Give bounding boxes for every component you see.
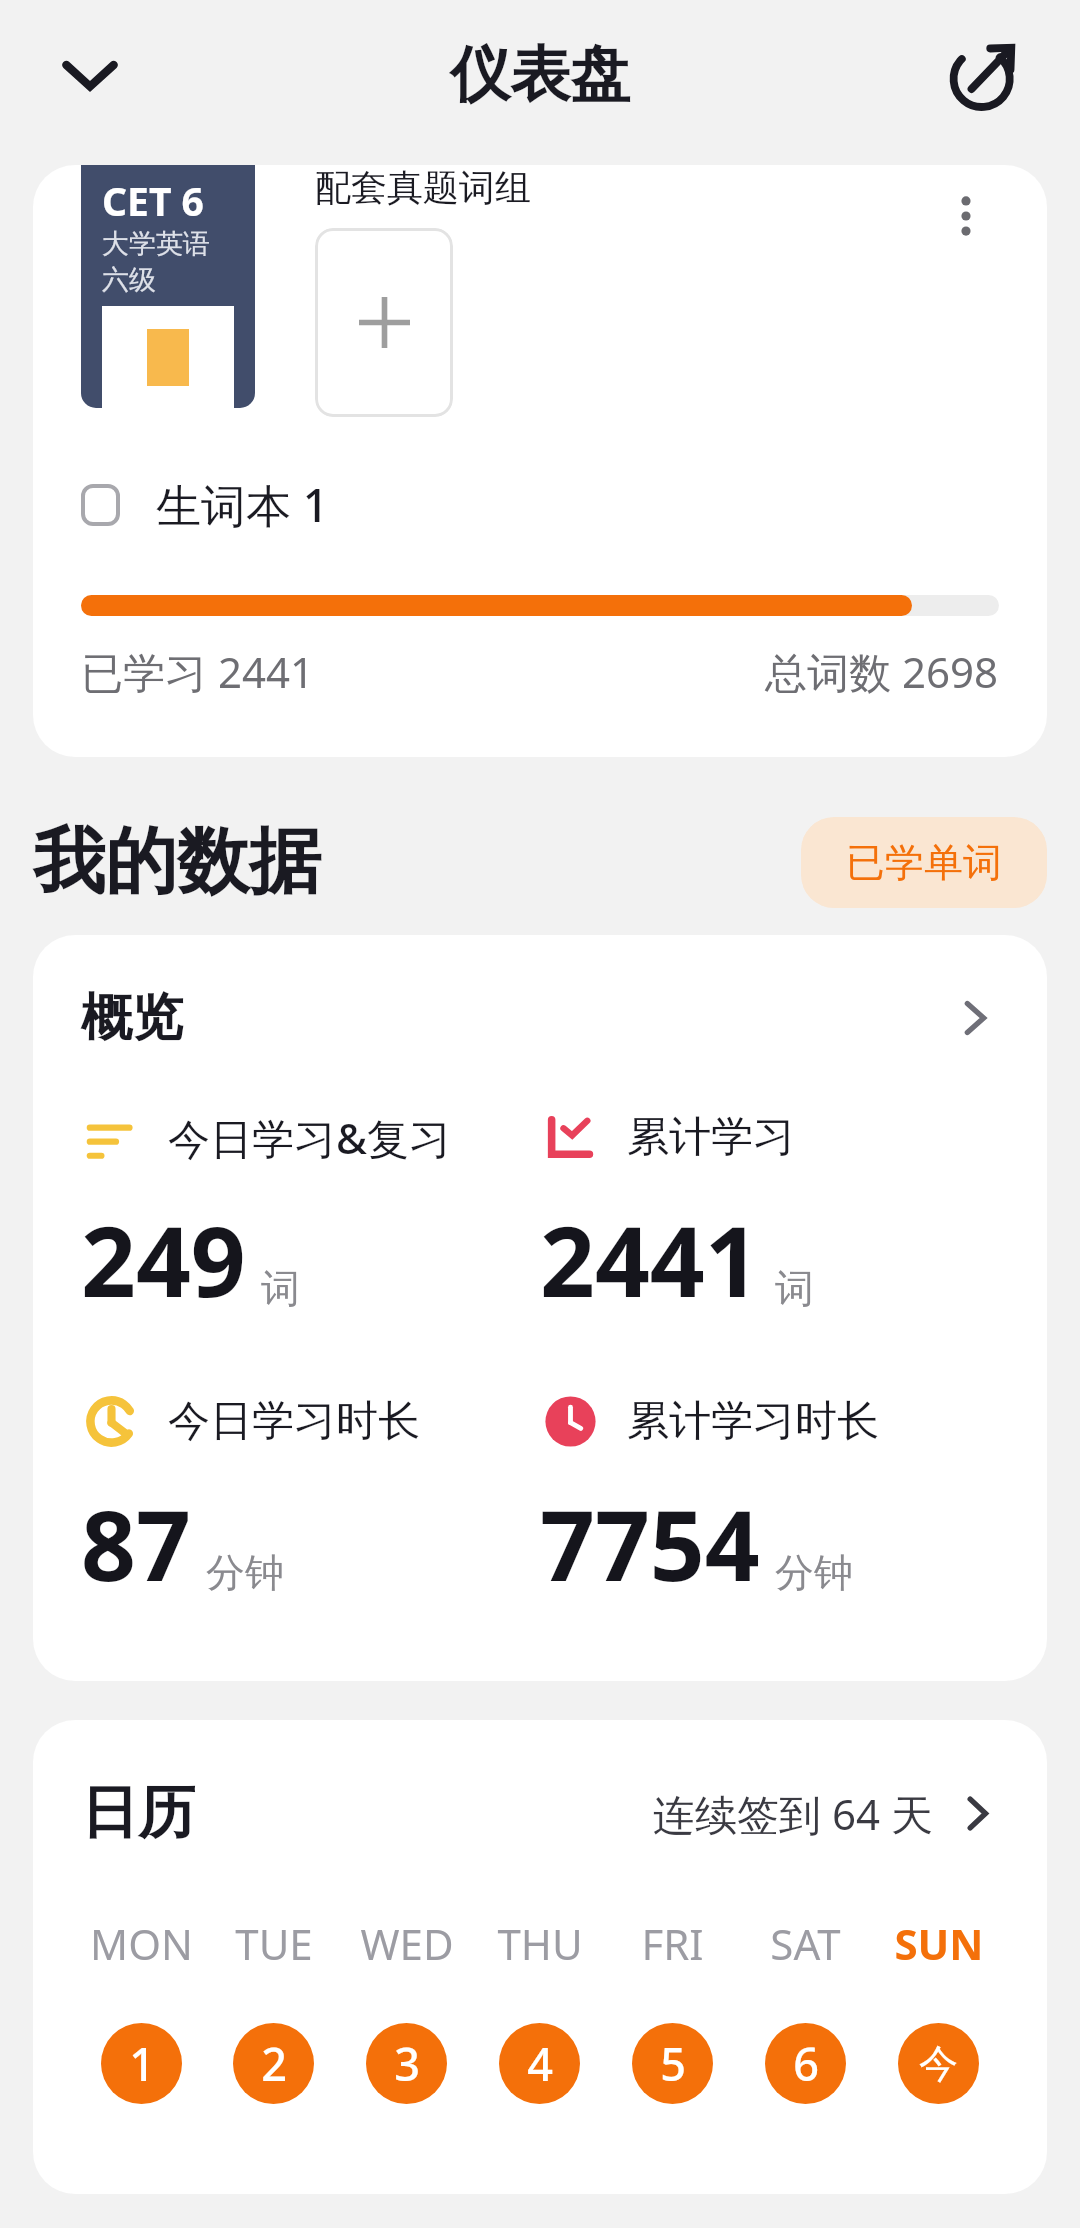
button[interactable]: 2: [233, 2023, 314, 2104]
button[interactable]: Share: [918, 9, 1050, 141]
staticText: 6: [793, 2033, 819, 2094]
button[interactable]: 生词本 1: [81, 474, 1047, 535]
staticText: CET 6: [102, 174, 204, 227]
staticText: 今: [919, 2039, 958, 2088]
staticText: WED: [360, 1915, 454, 1972]
staticText: 今日学习&复习: [168, 1109, 451, 1166]
button[interactable]: More options: [921, 171, 1011, 261]
staticText: 已学单词: [846, 838, 1002, 887]
button[interactable]: 3: [366, 2023, 447, 2104]
staticText: 词: [775, 1264, 814, 1313]
staticText: 大学英语六级: [102, 227, 234, 297]
staticText: SAT: [770, 1915, 841, 1972]
staticText: 分钟: [775, 1548, 853, 1597]
staticText: 已学习 2441: [81, 643, 315, 700]
button[interactable]: 1: [101, 2023, 182, 2104]
button[interactable]: 6: [765, 2023, 846, 2104]
button[interactable]: 5: [632, 2023, 713, 2104]
button[interactable]: 今: [898, 2023, 979, 2104]
staticText: 2: [261, 2033, 287, 2094]
button[interactable]: 概览: [81, 986, 999, 1050]
staticText: 我的数据: [33, 817, 321, 908]
button[interactable]: 今日学习&复习: [81, 1107, 540, 1325]
staticText: 词: [261, 1264, 300, 1313]
button[interactable]: 已学单词: [801, 817, 1047, 908]
staticText: MON: [90, 1915, 193, 1972]
staticText: 日历: [81, 1777, 195, 1849]
staticText: 1: [129, 2033, 155, 2094]
staticText: 249: [81, 1194, 246, 1325]
staticText: 累计学习: [627, 1111, 795, 1164]
staticText: 3: [394, 2033, 420, 2094]
staticText: 2441: [540, 1194, 760, 1325]
button[interactable]: 累计学习时长: [540, 1391, 999, 1609]
staticText: 生词本 1: [156, 474, 329, 535]
button[interactable]: Collapse: [24, 9, 156, 141]
staticText: 今日学习时长: [168, 1395, 420, 1448]
staticText: 5: [660, 2033, 686, 2094]
staticText: FRI: [641, 1915, 704, 1972]
staticText: THU: [497, 1915, 583, 1972]
staticText: 概览: [81, 986, 183, 1050]
staticText: 7754: [540, 1478, 760, 1609]
button[interactable]: CET 6: [81, 165, 255, 408]
staticText: 87: [81, 1478, 191, 1609]
staticText: 连续签到 64 天: [653, 1785, 933, 1842]
staticText: 累计学习时长: [627, 1395, 879, 1448]
staticText: TUE: [235, 1915, 313, 1972]
staticText: SUN: [894, 1915, 984, 1972]
staticText: 4: [527, 2033, 553, 2094]
staticText: 仪表盘: [450, 37, 630, 113]
button[interactable]: Add word group: [315, 228, 453, 417]
button[interactable]: 今日学习时长: [81, 1391, 540, 1609]
staticText: 分钟: [206, 1548, 284, 1597]
button[interactable]: 累计学习: [540, 1107, 999, 1325]
staticText: 配套真题词组: [315, 165, 531, 210]
button[interactable]: 4: [499, 2023, 580, 2104]
staticText: 总词数 2698: [765, 643, 999, 700]
button[interactable]: 连续签到 64 天: [653, 1785, 999, 1842]
